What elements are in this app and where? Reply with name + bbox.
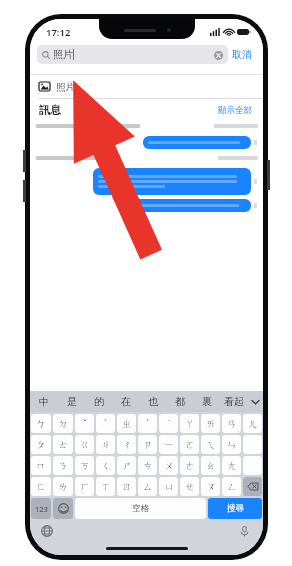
staticText: ㄈ xyxy=(36,481,46,493)
staticText: ㄌ xyxy=(58,481,68,493)
staticText: ㄖ xyxy=(122,481,132,493)
button[interactable]: ㄥ xyxy=(222,477,241,496)
staticText: ㄟ xyxy=(206,439,216,451)
button[interactable]: ㄗ xyxy=(138,435,157,454)
button[interactable]: ㄐ xyxy=(96,435,115,454)
button[interactable]: ㄕ xyxy=(117,456,136,475)
button[interactable]: ㄋ xyxy=(53,456,73,475)
staticText: ㄋ xyxy=(58,460,68,472)
button[interactable]: Switch keyboard xyxy=(40,524,54,538)
staticText: 搜尋 xyxy=(227,503,244,514)
button[interactable]: Emoji xyxy=(53,498,73,519)
staticText: ˙ xyxy=(168,417,170,430)
button[interactable]: ㄈ xyxy=(31,477,51,496)
staticText: 顯示全部 xyxy=(218,105,252,116)
staticText: ㄓ xyxy=(122,418,132,430)
button[interactable]: ㄦ xyxy=(243,414,262,433)
button[interactable]: 看起 xyxy=(220,391,247,412)
button[interactable]: 也 xyxy=(139,391,166,412)
staticText: ㄅ xyxy=(36,418,46,430)
button[interactable]: ㄒ xyxy=(96,477,115,496)
button[interactable]: 是 xyxy=(58,391,85,412)
button[interactable]: 顯示全部 xyxy=(216,103,254,118)
button[interactable]: ㄔ xyxy=(117,435,136,454)
button[interactable]: ㄜ xyxy=(180,456,199,475)
button[interactable]: ㄑ xyxy=(96,456,115,475)
button[interactable]: ㄩ xyxy=(159,477,178,496)
button[interactable]: ㄟ xyxy=(201,435,220,454)
button[interactable]: ㄊ xyxy=(53,435,73,454)
button[interactable]: ㄨ xyxy=(159,456,178,475)
staticText: ㄧ xyxy=(164,439,174,451)
button[interactable]: ㄠ xyxy=(201,456,220,475)
button[interactable]: ㄢ xyxy=(222,414,241,433)
staticText: 看起 xyxy=(224,395,244,408)
button[interactable]: ㄎ xyxy=(75,456,94,475)
staticText: ㄩ xyxy=(164,481,174,493)
staticText: ㄡ xyxy=(206,481,216,493)
button[interactable]: ㄡ xyxy=(201,477,220,496)
button[interactable]: ㄏ xyxy=(75,477,94,496)
button[interactable]: 中 xyxy=(30,391,58,412)
staticText: ㄜ xyxy=(185,460,195,472)
staticText: ㄉ xyxy=(58,418,68,430)
button[interactable]: ㄣ xyxy=(222,435,241,454)
button[interactable]: Dictation xyxy=(237,524,251,538)
button[interactable]: ㄙ xyxy=(138,477,157,496)
button[interactable]: Delete xyxy=(243,477,262,496)
button[interactable]: ㄛ xyxy=(180,435,199,454)
button[interactable]: ㄇ xyxy=(31,456,51,475)
button[interactable]: Clear xyxy=(213,50,223,60)
button[interactable]: ㄖ xyxy=(117,477,136,496)
staticText: 是 xyxy=(67,395,77,408)
button[interactable]: ㄧ xyxy=(159,435,178,454)
button[interactable] xyxy=(243,456,262,475)
staticText: ˇ xyxy=(83,417,87,430)
button[interactable]: 在 xyxy=(112,391,139,412)
button[interactable]: Expand suggestions xyxy=(247,391,263,412)
staticText: 訊息 xyxy=(39,103,61,117)
button[interactable] xyxy=(123,199,251,212)
staticText: ㄨ xyxy=(164,460,174,472)
button[interactable] xyxy=(243,435,262,454)
button[interactable]: ㄚ xyxy=(180,414,199,433)
staticText: ㄎ xyxy=(80,460,90,472)
button[interactable]: ˋ xyxy=(96,414,115,433)
button[interactable]: 取消 xyxy=(228,45,256,64)
button[interactable]: 照片 xyxy=(37,45,228,64)
staticText: ㄑ xyxy=(101,460,111,472)
button[interactable]: ˊ xyxy=(138,414,157,433)
staticText: ㄦ xyxy=(248,418,258,430)
staticText: 17:12 xyxy=(46,26,71,39)
staticText: 照片 xyxy=(53,48,73,61)
button[interactable]: ㄅ xyxy=(31,414,51,433)
button[interactable]: 的 xyxy=(85,391,112,412)
button[interactable]: 裏 xyxy=(193,391,220,412)
staticText: ㄝ xyxy=(185,481,195,493)
button[interactable]: ˙ xyxy=(159,414,178,433)
button[interactable]: 空格 xyxy=(75,498,206,519)
button[interactable]: ㄓ xyxy=(117,414,136,433)
button[interactable]: 搜尋 xyxy=(208,498,262,519)
staticText: ㄔ xyxy=(122,439,132,451)
staticText: ㄥ xyxy=(227,481,237,493)
button[interactable]: ㄘ xyxy=(138,456,157,475)
button[interactable] xyxy=(93,168,251,195)
button[interactable]: ˇ xyxy=(75,414,94,433)
staticText: ㄕ xyxy=(122,460,132,472)
button[interactable] xyxy=(143,136,251,149)
button[interactable]: ㄌ xyxy=(53,477,73,496)
button[interactable]: ㄤ xyxy=(222,456,241,475)
button[interactable]: ㄝ xyxy=(180,477,199,496)
button[interactable]: ㄞ xyxy=(201,414,220,433)
button[interactable]: 照片 xyxy=(30,75,263,98)
button[interactable]: 都 xyxy=(166,391,193,412)
staticText: 中 xyxy=(39,395,49,408)
staticText: 空格 xyxy=(132,503,149,514)
staticText: 的 xyxy=(94,395,104,408)
button[interactable]: ㄆ xyxy=(31,435,51,454)
button[interactable]: ㄍ xyxy=(75,435,94,454)
button[interactable]: 123 xyxy=(31,498,51,519)
staticText: ˊ xyxy=(146,417,149,430)
button[interactable]: ㄉ xyxy=(53,414,73,433)
